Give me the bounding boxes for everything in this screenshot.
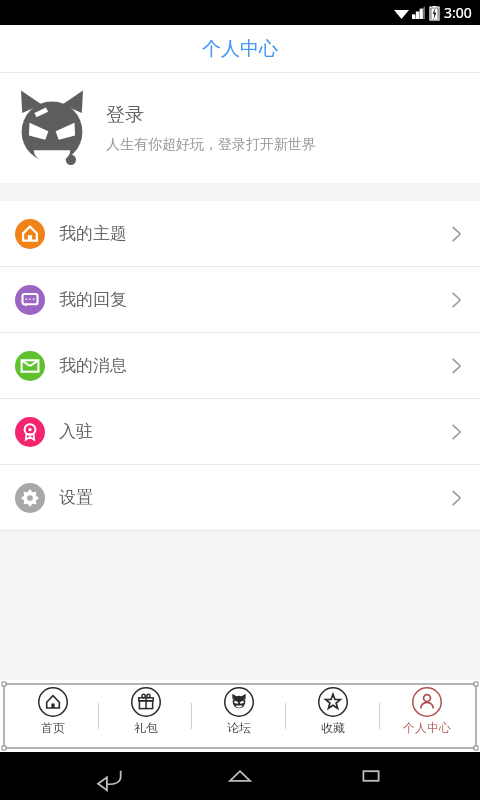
- staticText: 人生有你超好玩，登录打开新世界: [106, 136, 316, 154]
- button[interactable]: 论坛: [192, 680, 286, 752]
- staticText: 我的主题: [59, 223, 127, 244]
- button[interactable]: 收藏: [286, 680, 380, 752]
- button[interactable]: Recent apps: [349, 754, 393, 798]
- button[interactable]: 我的回复: [0, 267, 480, 332]
- button[interactable]: Home: [218, 754, 262, 798]
- staticText: 入驻: [59, 421, 93, 442]
- button[interactable]: 我的消息: [0, 333, 480, 398]
- staticText: 登录: [106, 103, 144, 127]
- staticText: 我的消息: [59, 355, 127, 376]
- button[interactable]: 入驻: [0, 399, 480, 464]
- button[interactable]: 礼包: [99, 680, 192, 752]
- button[interactable]: 登录: [0, 73, 480, 183]
- staticText: 论坛: [227, 720, 251, 735]
- button[interactable]: 首页: [6, 680, 99, 752]
- staticText: 礼包: [134, 720, 158, 735]
- staticText: 3:00: [444, 3, 472, 22]
- button[interactable]: 设置: [0, 465, 480, 530]
- staticText: 设置: [59, 487, 93, 508]
- staticText: 首页: [41, 720, 65, 735]
- staticText: 个人中心: [202, 37, 278, 61]
- staticText: 收藏: [321, 720, 345, 735]
- staticText: 个人中心: [403, 720, 451, 735]
- button[interactable]: Back: [87, 754, 131, 798]
- staticText: 我的回复: [59, 289, 127, 310]
- button[interactable]: 我的主题: [0, 201, 480, 266]
- button[interactable]: 个人中心: [380, 680, 474, 752]
